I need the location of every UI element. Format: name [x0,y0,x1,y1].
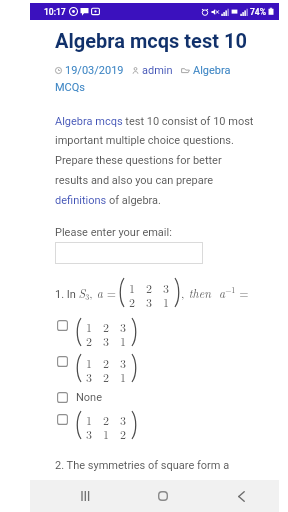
staticText: 1 [103,425,110,439]
staticText: 74% [250,7,266,17]
button[interactable]: Back [224,480,258,512]
button[interactable]: Recent apps [68,480,102,512]
button[interactable]: Option [57,414,68,425]
staticText: 1 [163,293,170,307]
staticText: Please enter your email: [55,226,172,239]
staticText: 1. In S3, a = [55,284,117,302]
staticText: 3 [86,368,93,382]
staticText: 10:17 [44,7,66,17]
staticText: Algebra mcqs test 10 consist of 10 most … [55,115,257,207]
staticText: 2. The symmetries of square form a [55,459,230,472]
button[interactable]: 19/03/2019 [65,64,124,77]
button[interactable]: MCQs [55,81,86,94]
staticText: , then a−1 = [181,284,249,301]
staticText: 2 [103,318,110,332]
staticText: 2 [86,332,93,346]
button[interactable]: Algebra [193,64,231,77]
staticText: 1 [86,354,93,368]
staticText: 3 [86,425,93,439]
staticText: 3 [120,354,127,368]
staticText: 1 [120,368,127,382]
button[interactable]: Option [57,320,68,331]
button[interactable]: Home [146,480,180,512]
staticText: 2 [129,293,136,307]
staticText: 2 [120,425,127,439]
staticText: 3 [163,279,170,293]
button[interactable]: Option [57,356,68,367]
button[interactable]: None [57,391,103,404]
staticText: 3 [120,411,127,425]
staticText: 2 [103,354,110,368]
staticText: 1 [86,318,93,332]
staticText: 3 [146,293,153,307]
staticText: None [76,391,103,404]
button[interactable]: admin [142,64,173,77]
button[interactable] [55,242,203,264]
staticText: 2 [103,368,110,382]
staticText: 2 [146,279,153,293]
staticText: Algebra mcqs test 10 [55,29,247,52]
staticText: 3 [120,318,127,332]
staticText: 1 [129,279,136,293]
staticText: 1 [86,411,93,425]
staticText: 2 [103,411,110,425]
staticText: 3 [103,332,110,346]
staticText: 1 [120,332,127,346]
